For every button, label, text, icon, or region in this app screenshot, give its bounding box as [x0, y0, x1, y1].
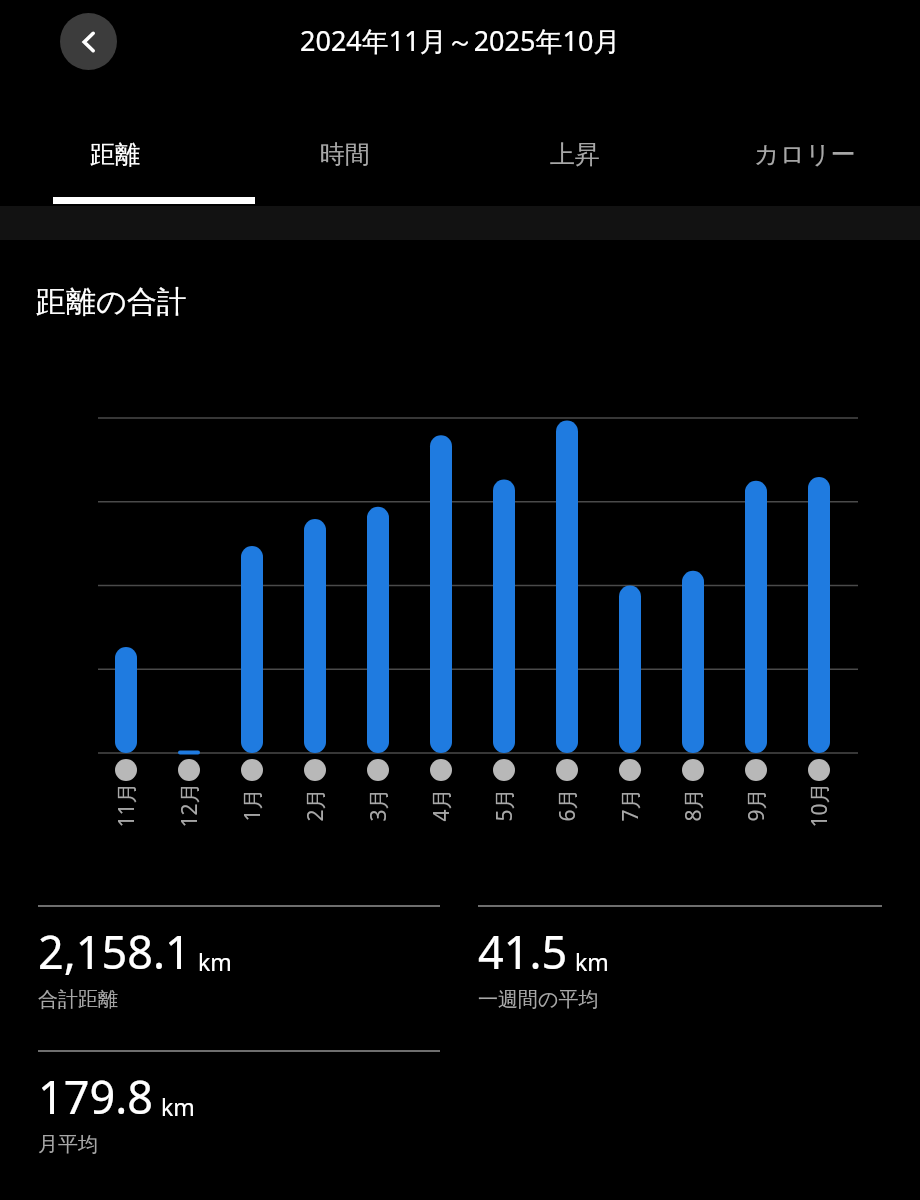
- staticText: km: [198, 946, 232, 977]
- staticText: 一週間の平均: [478, 987, 599, 1012]
- staticText: 5月: [489, 787, 518, 821]
- staticText: km: [575, 946, 609, 977]
- staticText: 41.5: [478, 921, 568, 982]
- staticText: 11月: [111, 781, 140, 827]
- button[interactable]: 41.5: [478, 905, 882, 1012]
- staticText: 合計距離: [38, 987, 118, 1012]
- staticText: 4月: [426, 787, 455, 821]
- button[interactable]: 179.8: [38, 1050, 440, 1157]
- button[interactable]: 上昇: [460, 118, 690, 190]
- staticText: 2024年11月～2025年10月: [300, 22, 621, 59]
- staticText: 上昇: [550, 139, 600, 170]
- staticText: 月平均: [38, 1132, 98, 1157]
- staticText: 時間: [320, 139, 370, 170]
- staticText: 3月: [363, 787, 392, 821]
- staticText: 6月: [552, 787, 581, 821]
- staticText: 7月: [615, 787, 644, 821]
- staticText: 10月: [804, 781, 833, 827]
- staticText: 距離: [90, 139, 140, 170]
- staticText: カロリー: [754, 139, 856, 170]
- button[interactable]: 時間: [230, 118, 460, 190]
- button[interactable]: 2,158.1: [38, 905, 440, 1012]
- staticText: 距離の合計: [36, 283, 187, 321]
- staticText: 1月: [237, 787, 266, 821]
- button[interactable]: Back: [60, 13, 117, 70]
- staticText: 12月: [174, 781, 203, 827]
- staticText: 179.8: [38, 1066, 154, 1127]
- button[interactable]: 距離: [0, 118, 230, 190]
- staticText: 2,158.1: [38, 921, 191, 982]
- button[interactable]: カロリー: [690, 118, 920, 190]
- staticText: 8月: [678, 787, 707, 821]
- staticText: 2月: [300, 787, 329, 821]
- staticText: km: [161, 1091, 195, 1122]
- staticText: 9月: [741, 787, 770, 821]
